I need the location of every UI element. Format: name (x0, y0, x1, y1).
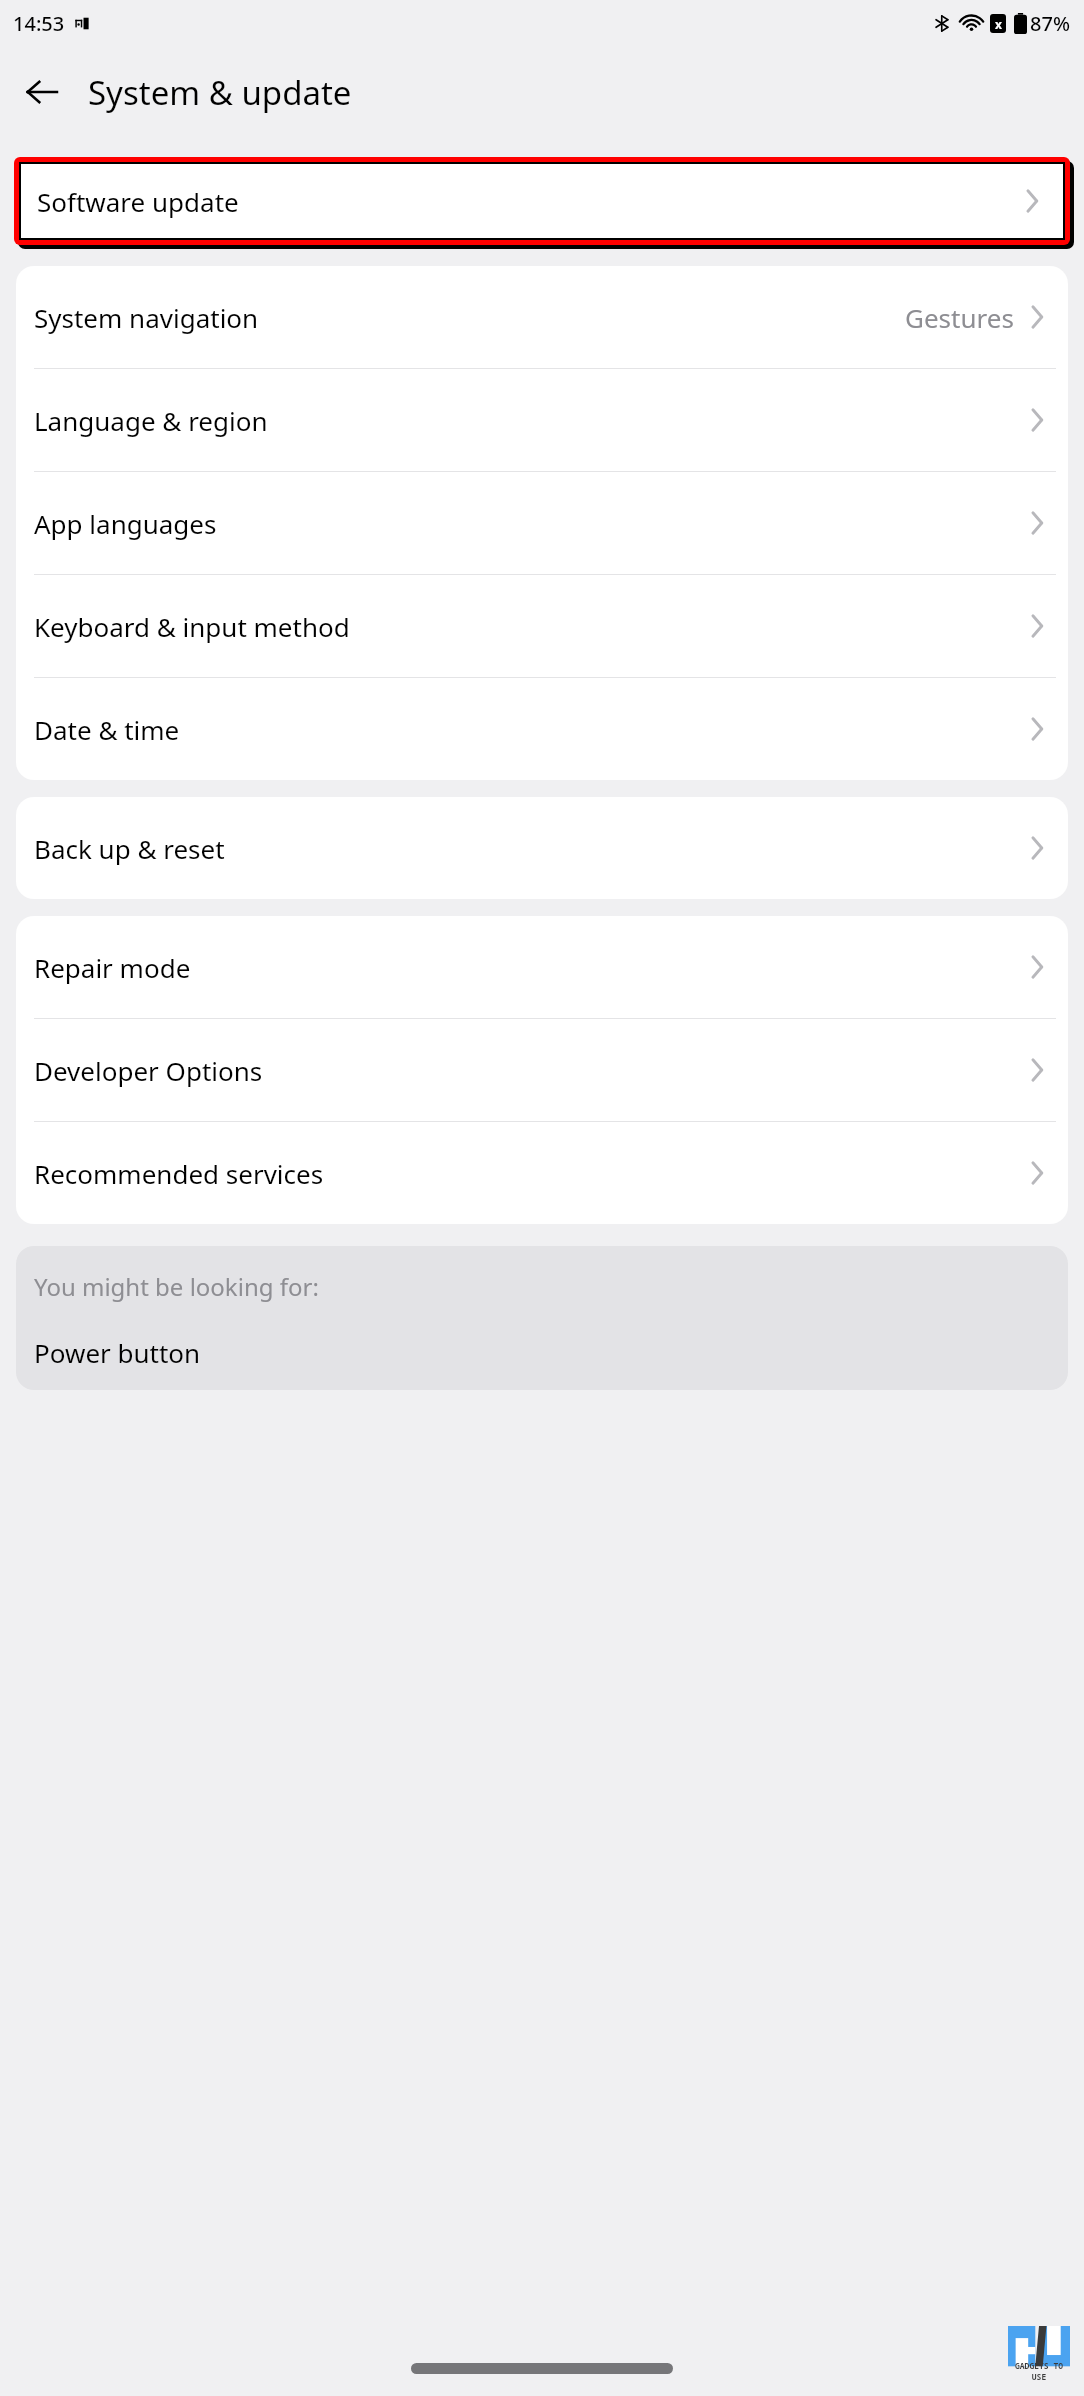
staticText: GADGETS TO USE (1008, 2360, 1070, 2382)
button[interactable]: System navigation (16, 266, 1068, 368)
staticText: Power button (34, 1335, 201, 1370)
button[interactable]: Language & region (16, 369, 1068, 471)
staticText: Recommended services (34, 1156, 324, 1191)
staticText: Language & region (34, 403, 268, 438)
staticText: Back up & reset (34, 831, 225, 866)
button[interactable]: Recommended services (16, 1122, 1068, 1224)
staticText: You might be looking for: (34, 1270, 319, 1303)
staticText: Repair mode (34, 950, 191, 985)
staticText: Keyboard & input method (34, 609, 350, 644)
staticText: Software update (37, 184, 239, 219)
staticText: Gestures (905, 300, 1014, 335)
button[interactable]: Date & time (16, 678, 1068, 780)
staticText: 87% (1030, 10, 1070, 37)
staticText: System & update (88, 70, 352, 115)
button[interactable]: Software update (21, 164, 1063, 238)
button[interactable]: App languages (16, 472, 1068, 574)
staticText: Date & time (34, 712, 180, 747)
staticText: Developer Options (34, 1053, 263, 1088)
button[interactable]: Repair mode (16, 916, 1068, 1018)
button[interactable]: Keyboard & input method (16, 575, 1068, 677)
staticText: System navigation (34, 300, 259, 335)
button[interactable]: Back up & reset (16, 797, 1068, 899)
button[interactable]: Power button (16, 1333, 1068, 1390)
button[interactable]: Developer Options (16, 1019, 1068, 1121)
staticText: x (995, 16, 1002, 32)
staticText: App languages (34, 506, 217, 541)
button[interactable]: Back (8, 58, 76, 126)
staticText: 14:53 (13, 10, 65, 37)
